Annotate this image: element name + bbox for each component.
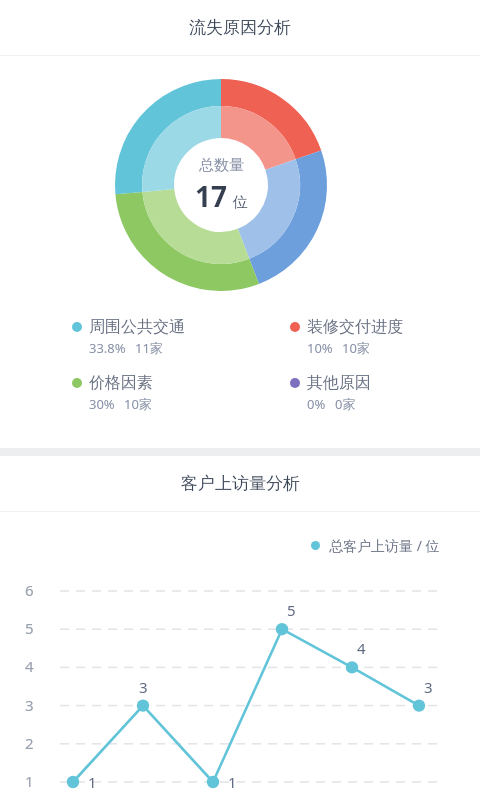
staticText: 装修交付进度 — [307, 317, 403, 337]
staticText: 总客户上访量 / 位 — [329, 536, 440, 555]
staticText: 1 — [25, 771, 34, 791]
staticText: 10% — [307, 339, 333, 357]
button[interactable]: 价格因素 — [0, 373, 240, 413]
staticText: 2 — [25, 733, 34, 753]
staticText: 总数量 — [199, 156, 244, 175]
staticText: 3 — [25, 695, 34, 715]
button[interactable]: 流失原因分析 — [0, 0, 480, 55]
staticText: 其他原因 — [307, 373, 371, 393]
staticText: 客户上访量分析 — [181, 473, 300, 494]
staticText: 5 — [25, 618, 34, 638]
button[interactable]: 其他原因 — [240, 373, 480, 413]
button[interactable]: 装修交付进度 — [240, 317, 480, 357]
staticText: 价格因素 — [89, 373, 153, 393]
staticText: 0家 — [335, 395, 356, 413]
button[interactable]: 客户上访量分析 — [0, 456, 480, 511]
staticText: 30% — [89, 395, 115, 413]
staticText: 0% — [307, 395, 326, 413]
staticText: 4 — [25, 656, 34, 676]
staticText: 5 — [287, 600, 296, 620]
staticText: 流失原因分析 — [189, 17, 291, 38]
staticText: 3 — [139, 677, 148, 697]
staticText: 11家 — [135, 339, 163, 357]
staticText: 4 — [357, 638, 366, 658]
staticText: 33.8% — [89, 339, 126, 357]
other: 流失原因占比环形图 — [115, 79, 327, 291]
staticText: 3 — [424, 677, 433, 697]
button[interactable]: 总客户上访量 / 位 — [311, 536, 440, 555]
other: 客户上访量折线图 — [0, 555, 480, 800]
staticText: 1 — [228, 772, 237, 792]
staticText: 10家 — [342, 339, 370, 357]
staticText: 17 — [195, 177, 228, 215]
staticText: 10家 — [124, 395, 152, 413]
staticText: 6 — [25, 580, 34, 600]
staticText: 周围公共交通 — [89, 317, 185, 337]
staticText: 位 — [233, 193, 248, 212]
button[interactable]: 周围公共交通 — [0, 317, 240, 357]
staticText: 1 — [88, 772, 97, 792]
